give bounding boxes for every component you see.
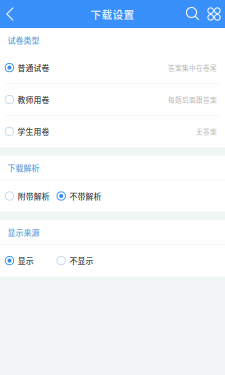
button[interactable]: More bbox=[203, 0, 224, 28]
staticText: 每题后面跟答案 bbox=[168, 95, 217, 104]
button[interactable]: 不带解析 bbox=[57, 180, 101, 212]
button[interactable]: Back bbox=[0, 0, 20, 28]
staticText: 答案集中在卷尾 bbox=[168, 63, 217, 72]
staticText: 学生用卷 bbox=[18, 126, 50, 137]
staticText: 显示 bbox=[18, 255, 34, 266]
staticText: 教师用卷 bbox=[18, 94, 50, 105]
staticText: 下载解析 bbox=[7, 162, 39, 173]
staticText: 不显示 bbox=[69, 255, 93, 266]
button[interactable]: Search bbox=[182, 0, 203, 28]
button[interactable]: 不显示 bbox=[57, 245, 93, 276]
staticText: 附带解析 bbox=[18, 190, 50, 202]
staticText: 不带解析 bbox=[69, 190, 101, 202]
button[interactable]: 附带解析 bbox=[0, 180, 57, 212]
staticText: 普通试卷 bbox=[18, 62, 50, 73]
staticText: 下载设置 bbox=[90, 6, 134, 22]
button[interactable]: 学生用卷 bbox=[0, 116, 225, 147]
staticText: 试卷类型 bbox=[7, 34, 39, 46]
staticText: 显示来源 bbox=[7, 226, 39, 238]
button[interactable]: 教师用卷 bbox=[0, 84, 225, 115]
staticText: 无答案 bbox=[196, 127, 217, 136]
button[interactable]: 普通试卷 bbox=[0, 52, 225, 83]
button[interactable]: 显示 bbox=[0, 245, 57, 276]
